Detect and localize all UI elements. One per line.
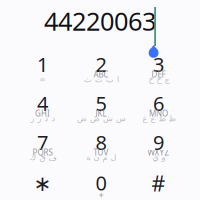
staticText: 8 — [95, 129, 106, 156]
staticText: # — [151, 169, 165, 197]
staticText: ف ق ك — [29, 153, 56, 162]
staticText: و ي — [152, 153, 165, 162]
staticText: ط ظ ع غ — [142, 114, 175, 123]
staticText: MNO — [149, 108, 168, 119]
staticText: 9 — [153, 129, 164, 156]
staticText: 7 — [37, 129, 48, 156]
staticText: 6 — [153, 90, 164, 117]
button[interactable]: # — [129, 170, 187, 200]
staticText: 1 — [37, 51, 48, 78]
staticText: د ذ ر ز — [30, 114, 55, 123]
staticText: 3 — [153, 51, 164, 78]
button[interactable]: ∗ — [13, 170, 71, 200]
staticText: 2 — [95, 51, 106, 78]
staticText: ج ح خ — [148, 75, 169, 84]
button[interactable]: 2 — [72, 52, 130, 91]
staticText: س ش ص ض — [76, 114, 125, 123]
staticText: ل م ن ه — [86, 153, 116, 162]
staticText: 44220063 — [44, 4, 156, 38]
staticText: 0 — [95, 169, 106, 196]
staticText: GHI — [35, 108, 50, 119]
staticText: WXYZ — [147, 147, 169, 158]
button[interactable]: 3 — [129, 52, 187, 91]
button[interactable]: 0 — [72, 170, 130, 200]
staticText: TUV — [93, 147, 108, 158]
button[interactable]: 4 — [13, 91, 71, 130]
staticText: ABC — [93, 69, 108, 80]
button[interactable]: 5 — [72, 91, 130, 130]
staticText: + — [98, 189, 103, 200]
staticText: DEF — [151, 69, 165, 80]
staticText: PQRS — [32, 147, 52, 158]
staticText: 5 — [95, 90, 106, 117]
staticText: JKL — [95, 108, 106, 119]
button[interactable]: 6 — [129, 91, 187, 130]
button[interactable]: 1 — [13, 52, 71, 91]
button[interactable]: 8 — [72, 130, 130, 169]
staticText: ∗ — [33, 171, 51, 196]
staticText: 4 — [37, 90, 48, 117]
button[interactable]: 9 — [129, 130, 187, 169]
staticText: ∞ — [39, 75, 46, 84]
staticText: ا ب ت ث — [83, 75, 118, 84]
button[interactable]: 7 — [13, 130, 71, 169]
